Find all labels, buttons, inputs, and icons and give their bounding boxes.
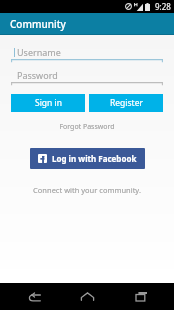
button[interactable]: Community — [0, 13, 174, 35]
staticText: 9:28 — [155, 1, 171, 12]
button[interactable]: Log in with Facebook — [38, 153, 137, 164]
staticText: Log in with Facebook — [52, 153, 137, 164]
button[interactable]: Username — [11, 44, 163, 62]
button[interactable]: Recent apps — [121, 283, 161, 310]
staticText: Username — [17, 46, 61, 58]
staticText: Register — [110, 97, 143, 109]
button[interactable]: Forgot Password — [11, 122, 163, 132]
button[interactable]: Back — [14, 283, 54, 310]
button[interactable]: Password — [11, 67, 163, 85]
button[interactable]: Register — [89, 94, 163, 112]
button[interactable]: Sign in — [11, 94, 85, 112]
staticText: Forgot Password — [59, 122, 115, 132]
button[interactable]: Home — [67, 283, 107, 310]
staticText: Password — [17, 69, 58, 81]
staticText: Sign in — [35, 97, 62, 109]
staticText: Community — [10, 17, 66, 31]
staticText: Connect with your community. — [33, 185, 141, 195]
